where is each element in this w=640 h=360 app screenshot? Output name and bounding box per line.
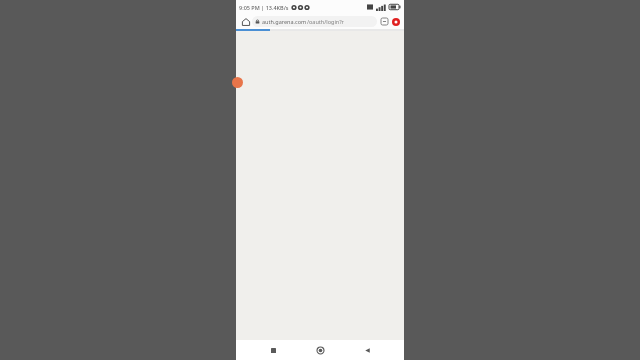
button[interactable]: Recent apps — [263, 340, 283, 360]
button[interactable]: Tabs — [379, 16, 390, 27]
button[interactable]: Menu — [390, 16, 401, 27]
button[interactable]: Back — [357, 340, 377, 360]
button[interactable]: Home — [239, 15, 252, 28]
button[interactable]: auth.garena.com — [252, 16, 377, 27]
button[interactable]: Home — [310, 340, 330, 360]
staticText: 9:05 PM | 13.4KB/s — [239, 4, 289, 11]
staticText: /oauth/login?r — [307, 18, 344, 25]
staticText: auth.garena.com — [262, 18, 307, 25]
